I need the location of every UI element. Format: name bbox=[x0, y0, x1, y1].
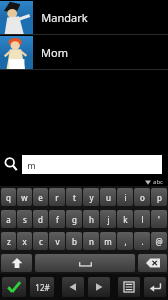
button[interactable]: f bbox=[49, 210, 65, 228]
staticText: ' bbox=[158, 214, 160, 225]
button[interactable]: ' bbox=[151, 210, 167, 228]
button[interactable]: j bbox=[100, 210, 116, 228]
staticText: i bbox=[124, 192, 127, 203]
button[interactable]: , bbox=[117, 232, 133, 250]
button[interactable]: m bbox=[22, 155, 162, 174]
staticText: d bbox=[38, 214, 43, 225]
button[interactable]: Right bbox=[88, 277, 110, 297]
staticText: @ bbox=[155, 236, 163, 247]
button[interactable]: b bbox=[66, 232, 82, 250]
staticText: y bbox=[89, 192, 94, 203]
staticText: u bbox=[106, 192, 111, 203]
button[interactable]: Space bbox=[35, 254, 135, 272]
staticText: j bbox=[107, 214, 110, 225]
button[interactable]: Mandark bbox=[0, 0, 168, 34]
staticText: t bbox=[73, 192, 76, 203]
button[interactable]: q bbox=[1, 188, 16, 206]
staticText: , bbox=[124, 236, 127, 247]
button[interactable]: @ bbox=[151, 232, 167, 250]
button[interactable]: s bbox=[17, 210, 32, 228]
staticText: n bbox=[89, 236, 94, 247]
button[interactable]: x bbox=[17, 232, 32, 250]
button[interactable]: u bbox=[100, 188, 116, 206]
staticText: c bbox=[39, 236, 43, 247]
button[interactable]: d bbox=[33, 210, 48, 228]
staticText: o bbox=[140, 192, 145, 203]
button[interactable]: Menu bbox=[118, 277, 140, 297]
staticText: . bbox=[141, 236, 144, 247]
button[interactable]: Shift bbox=[1, 254, 32, 272]
staticText: r bbox=[55, 192, 59, 203]
button[interactable]: . bbox=[134, 232, 150, 250]
staticText: s bbox=[23, 214, 27, 225]
button[interactable]: r bbox=[49, 188, 65, 206]
staticText: f bbox=[56, 214, 59, 225]
staticText: l bbox=[141, 214, 144, 225]
button[interactable]: e bbox=[33, 188, 48, 206]
button[interactable]: l bbox=[134, 210, 150, 228]
button[interactable]: n bbox=[83, 232, 99, 250]
staticText: v bbox=[55, 236, 60, 247]
button[interactable]: Enter bbox=[144, 277, 166, 297]
staticText: w bbox=[21, 192, 28, 203]
staticText: Mandark bbox=[41, 10, 88, 25]
button[interactable]: h bbox=[83, 210, 99, 228]
staticText: g bbox=[72, 214, 77, 225]
button[interactable]: m bbox=[100, 232, 116, 250]
button[interactable]: OK bbox=[2, 277, 26, 297]
button[interactable]: c bbox=[33, 232, 48, 250]
staticText: abc bbox=[153, 178, 163, 186]
staticText: Mom bbox=[41, 45, 68, 60]
staticText: m bbox=[27, 159, 36, 171]
staticText: e bbox=[38, 192, 43, 203]
staticText: q bbox=[6, 192, 11, 203]
button[interactable]: p bbox=[151, 188, 167, 206]
staticText: m bbox=[104, 236, 112, 247]
button[interactable]: Numbers bbox=[30, 277, 54, 297]
button[interactable]: g bbox=[66, 210, 82, 228]
button[interactable]: Left bbox=[62, 277, 84, 297]
staticText: h bbox=[89, 214, 94, 225]
staticText: x bbox=[22, 236, 27, 247]
button[interactable]: Mom bbox=[0, 35, 168, 69]
button[interactable]: o bbox=[134, 188, 150, 206]
button[interactable]: i bbox=[117, 188, 133, 206]
staticText: z bbox=[7, 236, 11, 247]
staticText: p bbox=[157, 192, 162, 203]
button[interactable]: t bbox=[66, 188, 82, 206]
button[interactable]: w bbox=[17, 188, 32, 206]
button[interactable]: v bbox=[49, 232, 65, 250]
button[interactable]: Search bbox=[0, 151, 22, 177]
button[interactable]: Backspace bbox=[138, 254, 167, 272]
button[interactable]: y bbox=[83, 188, 99, 206]
button[interactable]: k bbox=[117, 210, 133, 228]
button[interactable]: z bbox=[1, 232, 16, 250]
staticText: k bbox=[123, 214, 128, 225]
button[interactable]: a bbox=[1, 210, 16, 228]
staticText: a bbox=[6, 214, 11, 225]
staticText: b bbox=[72, 236, 77, 247]
staticText: 12# bbox=[35, 282, 50, 293]
